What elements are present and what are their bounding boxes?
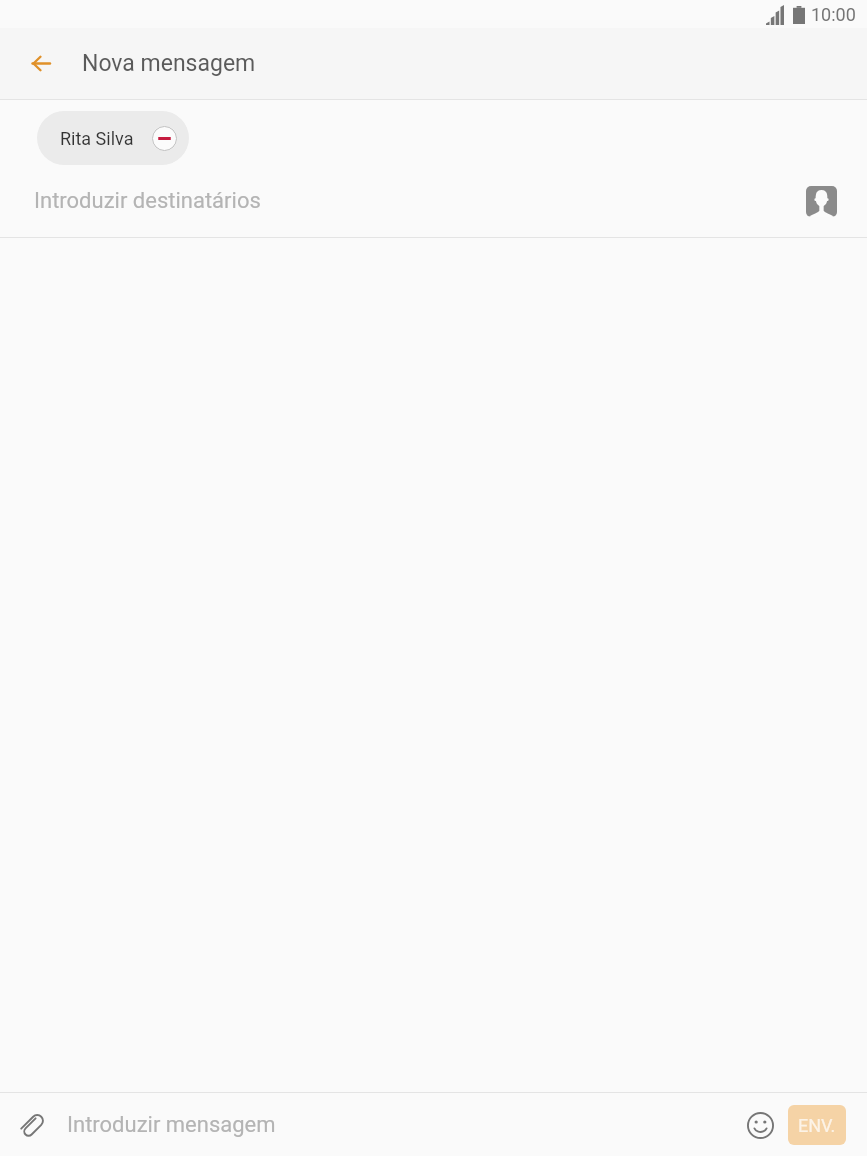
button[interactable]: Back (13, 36, 69, 92)
staticText: Nova mensagem (82, 50, 256, 77)
staticText: ENV. (798, 1115, 836, 1136)
button[interactable]: Rita Silva (37, 111, 189, 165)
button[interactable]: Remove recipient (152, 126, 177, 151)
staticText: Rita Silva (60, 128, 134, 149)
staticText: 10:00 (811, 4, 856, 25)
staticText: Introduzir mensagem (67, 1112, 276, 1138)
button[interactable]: Choose contacts (801, 181, 841, 221)
staticText: Introduzir destinatários (34, 188, 261, 214)
button[interactable]: ENV. (788, 1105, 846, 1145)
button[interactable]: Emoji (740, 1105, 780, 1145)
button[interactable]: Attach (10, 1103, 54, 1147)
